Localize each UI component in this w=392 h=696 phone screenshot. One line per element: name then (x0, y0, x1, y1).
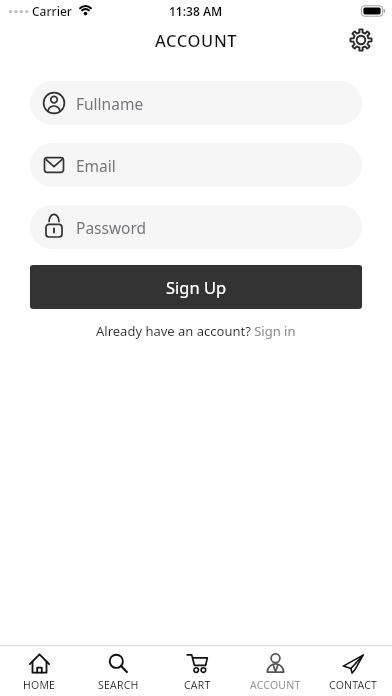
button[interactable]: Already have an account? Sign in (0, 322, 392, 340)
button[interactable]: HOME (0, 646, 79, 696)
staticText: SEARCH (98, 678, 139, 692)
button[interactable]: SEARCH (79, 646, 158, 696)
button[interactable]: Fullname (30, 81, 362, 125)
staticText: HOME (23, 678, 56, 692)
staticText: CART (184, 678, 211, 692)
staticText: ACCOUNT (250, 678, 301, 692)
button[interactable]: ACCOUNT (236, 646, 314, 696)
staticText: ACCOUNT (155, 29, 238, 51)
staticText: Password (76, 217, 147, 238)
staticText: Fullname (76, 93, 144, 114)
staticText: Already have an account? Sign in (96, 322, 296, 340)
button[interactable]: Sign Up (30, 265, 362, 309)
button[interactable]: Email (30, 143, 362, 187)
staticText: 11:38 AM (169, 3, 223, 19)
button[interactable]: CART (158, 646, 236, 696)
button[interactable] (347, 26, 375, 54)
staticText: Sign Up (166, 276, 227, 298)
button[interactable]: CONTACT (314, 646, 392, 696)
staticText: CONTACT (329, 678, 378, 692)
staticText: Carrier (32, 3, 72, 19)
staticText: Email (76, 155, 116, 176)
button[interactable]: Password (30, 205, 362, 249)
